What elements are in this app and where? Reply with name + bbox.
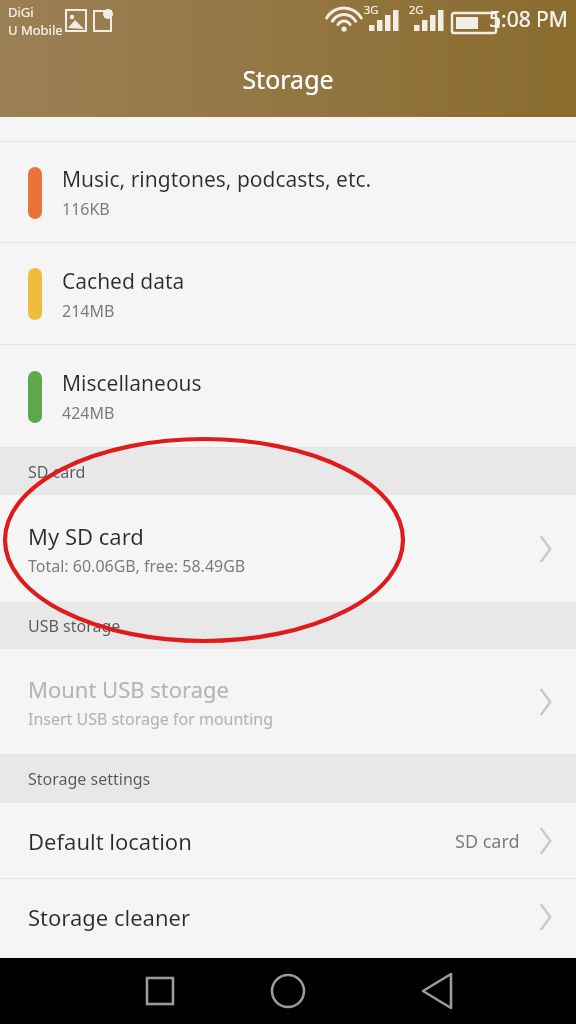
button[interactable]: Home bbox=[264, 967, 312, 1015]
button[interactable]: Miscellaneous bbox=[0, 345, 576, 448]
button[interactable]: My SD card bbox=[0, 495, 576, 602]
button[interactable]: Storage cleaner bbox=[0, 879, 576, 955]
staticText: Miscellaneous bbox=[62, 369, 202, 398]
staticText: Cached data bbox=[62, 267, 185, 296]
button[interactable]: Back bbox=[415, 967, 463, 1015]
staticText: Storage settings bbox=[28, 768, 151, 790]
staticText: My SD card bbox=[28, 521, 144, 551]
staticText: 424MB bbox=[62, 402, 115, 424]
button[interactable]: Recents bbox=[136, 967, 184, 1015]
staticText: Insert USB storage for mounting bbox=[28, 708, 273, 730]
staticText: DiGi bbox=[8, 3, 34, 21]
staticText: Music, ringtones, podcasts, etc. bbox=[62, 165, 372, 194]
staticText: 2G bbox=[409, 2, 424, 17]
staticText: Mount USB storage bbox=[28, 674, 230, 704]
staticText: SD card bbox=[455, 829, 520, 854]
staticText: Total: 60.06GB, free: 58.49GB bbox=[28, 555, 246, 577]
staticText: 5:08 PM bbox=[489, 5, 568, 34]
button[interactable]: Cached data bbox=[0, 243, 576, 345]
button[interactable]: Music, ringtones, podcasts, etc. bbox=[0, 142, 576, 243]
button[interactable]: Mount USB storage bbox=[0, 649, 576, 755]
staticText: USB storage bbox=[28, 615, 121, 637]
staticText: SD card bbox=[28, 461, 86, 483]
staticText: 116KB bbox=[62, 198, 110, 220]
button[interactable]: Default location bbox=[0, 803, 576, 879]
staticText: U Mobile bbox=[8, 21, 63, 39]
staticText: 214MB bbox=[62, 300, 115, 322]
staticText: Storage cleaner bbox=[28, 902, 191, 932]
staticText: Default location bbox=[28, 826, 192, 856]
staticText: 3G bbox=[364, 2, 379, 17]
staticText: Storage bbox=[242, 62, 334, 96]
